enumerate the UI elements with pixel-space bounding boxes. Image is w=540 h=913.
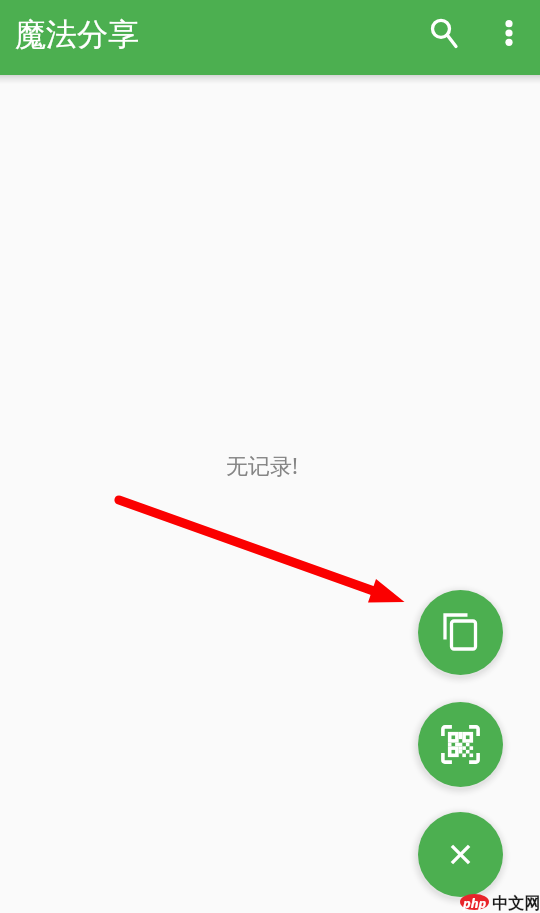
button[interactable]: Copy [418,590,503,675]
button[interactable]: Search [413,5,469,61]
button[interactable]: Close [418,812,503,897]
staticText: 无记录! [226,450,298,480]
staticText: 魔法分享 [15,15,139,54]
staticText: 中文网 [492,894,540,913]
button[interactable]: Scan QR code [418,702,503,787]
staticText: php [463,894,487,912]
button[interactable]: More options [481,5,537,61]
